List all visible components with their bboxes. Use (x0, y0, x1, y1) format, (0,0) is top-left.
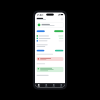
button[interactable]: Filter (37, 30, 45, 32)
button[interactable]: Share (55, 50, 63, 52)
button[interactable]: Details (37, 50, 44, 52)
button[interactable] (37, 40, 63, 41)
button[interactable]: Tab 4 (57, 83, 65, 87)
button[interactable]: Tab 2 (42, 83, 50, 87)
button[interactable] (37, 57, 63, 61)
button[interactable] (37, 38, 63, 39)
button[interactable]: Account (60, 17, 63, 20)
staticText: 9:41 (37, 13, 44, 16)
button[interactable]: Tab 1 (35, 83, 42, 87)
button[interactable] (37, 67, 63, 72)
button[interactable]: Tab 3 (50, 83, 57, 87)
button[interactable]: Continue (54, 30, 63, 32)
button[interactable] (37, 35, 63, 37)
